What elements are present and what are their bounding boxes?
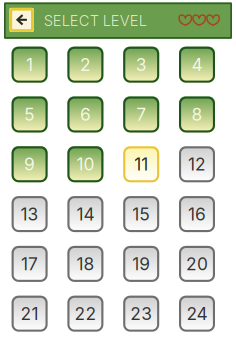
- staticText: 11: [134, 154, 148, 175]
- button[interactable]: 10: [67, 146, 103, 182]
- staticText: 3: [136, 54, 147, 75]
- staticText: 7: [136, 104, 146, 125]
- staticText: 23: [130, 303, 152, 324]
- staticText: 16: [188, 204, 206, 225]
- button[interactable]: 17: [12, 246, 48, 282]
- staticText: SELECT LEVEL: [44, 12, 147, 29]
- button[interactable]: 15: [123, 196, 159, 232]
- button[interactable]: 5: [12, 96, 48, 132]
- staticText: 19: [132, 253, 150, 274]
- button[interactable]: 16: [179, 196, 215, 232]
- button[interactable]: 1: [12, 47, 48, 83]
- button[interactable]: 18: [67, 246, 103, 282]
- staticText: 13: [21, 204, 39, 225]
- button[interactable]: 21: [12, 296, 48, 332]
- button[interactable]: 12: [179, 146, 215, 182]
- button[interactable]: 6: [67, 96, 103, 132]
- button[interactable]: 24: [179, 296, 215, 332]
- staticText: 18: [76, 253, 94, 274]
- button[interactable]: 3: [123, 47, 159, 83]
- button[interactable]: 2: [67, 47, 103, 83]
- button[interactable]: 22: [67, 296, 103, 332]
- button[interactable]: 23: [123, 296, 159, 332]
- button[interactable]: Back: [9, 8, 34, 33]
- button[interactable]: 19: [123, 246, 159, 282]
- staticText: 24: [186, 303, 207, 324]
- staticText: 9: [24, 154, 35, 175]
- staticText: 21: [21, 303, 39, 324]
- staticText: 22: [74, 303, 96, 324]
- button[interactable]: 13: [12, 196, 48, 232]
- staticText: 10: [76, 154, 94, 175]
- button[interactable]: 14: [67, 196, 103, 232]
- staticText: 1: [26, 54, 33, 75]
- staticText: 4: [191, 54, 202, 75]
- staticText: 20: [186, 253, 208, 274]
- button[interactable]: 8: [179, 96, 215, 132]
- button[interactable]: 7: [123, 96, 159, 132]
- button[interactable]: 11: [123, 146, 159, 182]
- staticText: 2: [80, 54, 91, 75]
- button[interactable]: 9: [12, 146, 48, 182]
- staticText: 14: [76, 204, 94, 225]
- staticText: 15: [132, 204, 150, 225]
- button[interactable]: 4: [179, 47, 215, 83]
- staticText: 17: [21, 253, 38, 274]
- staticText: 12: [188, 154, 206, 175]
- staticText: 6: [80, 104, 91, 125]
- staticText: 8: [191, 104, 202, 125]
- button[interactable]: 20: [179, 246, 215, 282]
- staticText: 5: [24, 104, 35, 125]
